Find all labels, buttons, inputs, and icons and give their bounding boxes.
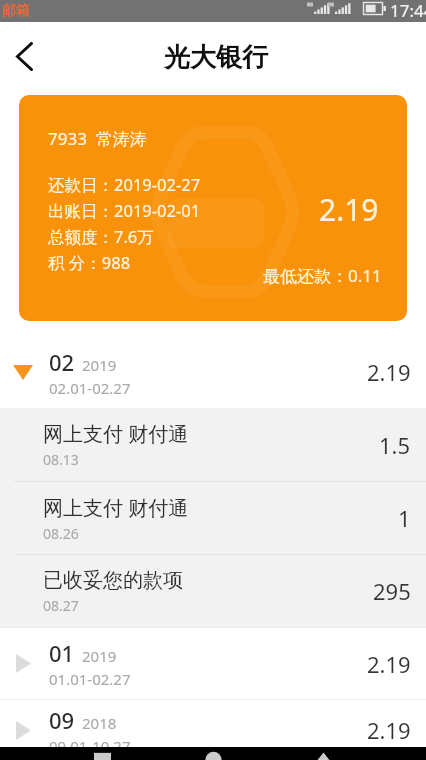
staticText: 网上支付 财付通: [43, 420, 189, 447]
staticText: 已收妥您的款项: [43, 568, 183, 593]
button[interactable]: 02: [0, 336, 426, 408]
staticText: 2.19: [367, 357, 411, 387]
button[interactable]: Back: [0, 32, 48, 80]
staticText: 2018: [82, 713, 117, 733]
button[interactable]: 网上支付 财付通: [0, 408, 426, 481]
staticText: 17:44: [390, 0, 426, 21]
staticText: 最低还款：0.11: [263, 264, 382, 287]
button[interactable]: 01: [0, 628, 426, 699]
staticText: 09.01-10.27: [49, 736, 131, 756]
staticText: 7933 常涛涛: [48, 127, 147, 150]
staticText: 2019: [82, 646, 117, 666]
staticText: 2019: [82, 355, 117, 375]
staticText: 2.19: [367, 649, 411, 679]
staticText: 网上支付 财付通: [43, 494, 189, 521]
staticText: 01: [49, 638, 75, 668]
staticText: 08.13: [43, 450, 79, 469]
staticText: 还款日：2019-02-27: [48, 173, 201, 196]
staticText: 09: [49, 705, 75, 735]
staticText: 积 分：988: [48, 251, 131, 274]
staticText: 光大银行: [164, 41, 268, 74]
button[interactable]: 09: [0, 700, 426, 760]
staticText: 08.26: [43, 524, 79, 543]
staticText: 08.27: [43, 596, 79, 615]
staticText: 02.01-02.27: [49, 378, 131, 398]
staticText: 01.01-02.27: [49, 669, 131, 689]
staticText: 出账日：2019-02-01: [48, 199, 201, 222]
staticText: 1: [398, 503, 411, 533]
staticText: 2.19: [367, 715, 411, 745]
staticText: 2.19: [319, 189, 379, 230]
staticText: 邮箱: [2, 2, 30, 20]
button[interactable]: 网上支付 财付通: [0, 481, 426, 554]
staticText: 295: [373, 576, 411, 606]
button[interactable]: 已收妥您的款项: [0, 554, 426, 627]
staticText: 总额度：7.6万: [48, 225, 154, 248]
button[interactable]: 7933 常涛涛: [19, 95, 407, 321]
staticText: 02: [49, 347, 75, 377]
staticText: 1.5: [379, 430, 411, 460]
